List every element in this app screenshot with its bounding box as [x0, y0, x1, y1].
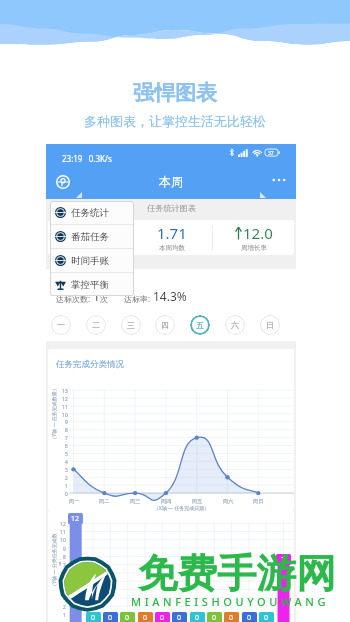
button[interactable]: 番茄任务 [50, 225, 134, 248]
staticText: 6 [57, 442, 68, 449]
staticText: 周五 [187, 498, 207, 505]
staticText: 任务统计 [71, 207, 109, 219]
button[interactable]: 12 [48, 220, 130, 255]
button[interactable]: 六 [225, 315, 245, 335]
staticText: 14.3% [153, 288, 187, 304]
staticText: 强悍图表 [0, 80, 350, 106]
button[interactable]: 12.0 [213, 220, 294, 255]
staticText: 8 [55, 553, 66, 560]
staticText: 日 [266, 320, 274, 330]
button[interactable]: 三 [121, 315, 141, 335]
staticText: 0 [177, 613, 182, 622]
button[interactable]: 任务统计 [50, 201, 134, 224]
staticText: 0 [247, 613, 252, 622]
staticText: 周六 [218, 498, 238, 505]
staticText: 四 [161, 320, 169, 330]
staticText: 3 [55, 594, 66, 601]
staticText: 番茄任务 [71, 231, 109, 243]
staticText: 4 [55, 586, 66, 593]
staticText: 任务完成分类情况 [56, 359, 124, 370]
staticText: 4 [57, 458, 68, 465]
staticText: 1 [93, 288, 100, 304]
staticText: 9 [55, 545, 66, 552]
staticText: 12 [71, 514, 80, 524]
staticText: 12.0 [243, 223, 273, 243]
staticText: 0 [212, 613, 217, 622]
staticText: 多种图表，让掌控生活无比轻松 [0, 113, 350, 129]
staticText: 本周 [46, 174, 296, 189]
staticText: 8 [57, 426, 68, 433]
staticText: MIANFEISHOUYOUWANG [131, 594, 329, 609]
staticText: 0 [57, 490, 68, 497]
staticText: 时间手账 [71, 255, 109, 267]
staticText: 0 [108, 613, 113, 622]
button[interactable]: 五 [190, 315, 210, 335]
button[interactable]: 日 [260, 315, 280, 335]
staticText: 六 [231, 320, 239, 330]
staticText: 掌控平衡 [71, 279, 109, 291]
staticText: 达标次数: [56, 293, 93, 304]
staticText: 2 [55, 603, 66, 610]
staticText: 10 [55, 536, 66, 543]
staticText: （Y轴 — 任务完成数量） [51, 384, 58, 444]
button[interactable]: 一 [51, 315, 71, 335]
staticText: 周日 [248, 498, 268, 505]
staticText: 3 [57, 466, 68, 473]
staticText: 本周均数 [159, 244, 185, 252]
staticText: 本周总数 [76, 244, 102, 252]
staticText: 37 [268, 150, 274, 157]
staticText: 0 [264, 613, 269, 622]
staticText: 10 [57, 411, 68, 418]
staticText: 11 [57, 403, 68, 410]
staticText: 12 [57, 395, 68, 402]
button[interactable]: 掌控平衡 [50, 273, 134, 296]
staticText: 周三 [125, 498, 145, 505]
staticText: 13 [57, 387, 68, 394]
staticText: 5 [55, 578, 66, 585]
staticText: 12 [55, 520, 66, 527]
staticText: 0 [125, 613, 130, 622]
staticText: 11 [55, 528, 66, 535]
staticText: 0 [143, 613, 148, 622]
staticText: 0 [91, 613, 96, 622]
staticText: 达标率: [124, 293, 153, 304]
button[interactable]: More options [270, 173, 288, 187]
staticText: 免费手游网 [138, 549, 336, 599]
staticText: 0 [229, 613, 234, 622]
staticText: 1 [55, 611, 66, 618]
staticText: 6 [55, 570, 66, 577]
staticText: 一 [57, 320, 65, 330]
button[interactable]: 时间手账 [50, 249, 134, 272]
staticText: 五 [196, 320, 204, 330]
staticText: 7 [281, 555, 286, 565]
staticText: 12 [80, 223, 98, 243]
staticText: 7 [57, 434, 68, 441]
staticText: 周一 [64, 498, 84, 505]
staticText: 次 [100, 294, 108, 304]
staticText: 周四 [156, 498, 176, 505]
staticText: （X轴 — 任务完成日期） [69, 505, 294, 511]
other: Site watermark [57, 555, 118, 613]
staticText: 23:19 0.3K/s [62, 153, 112, 164]
staticText: 三 [127, 320, 135, 330]
staticText: 9 [57, 418, 68, 425]
button[interactable]: Open menu [56, 175, 70, 189]
staticText: 2 [57, 474, 68, 481]
staticText: 0 [160, 613, 165, 622]
staticText: 二 [92, 320, 100, 330]
staticText: 1.71 [157, 223, 187, 243]
staticText: 周二 [94, 498, 114, 505]
button[interactable]: 四 [155, 315, 175, 335]
button[interactable]: 1.71 [131, 220, 212, 255]
staticText: 1 [57, 482, 68, 489]
button[interactable]: 二 [86, 315, 106, 335]
staticText: 0 [195, 613, 200, 622]
staticText: （Y轴 — 分类任务完成数量） [51, 529, 61, 593]
staticText: 7 [55, 561, 66, 568]
staticText: 任务统计图表 [147, 203, 197, 213]
staticText: 周增长率 [241, 244, 267, 252]
staticText: 5 [57, 450, 68, 457]
